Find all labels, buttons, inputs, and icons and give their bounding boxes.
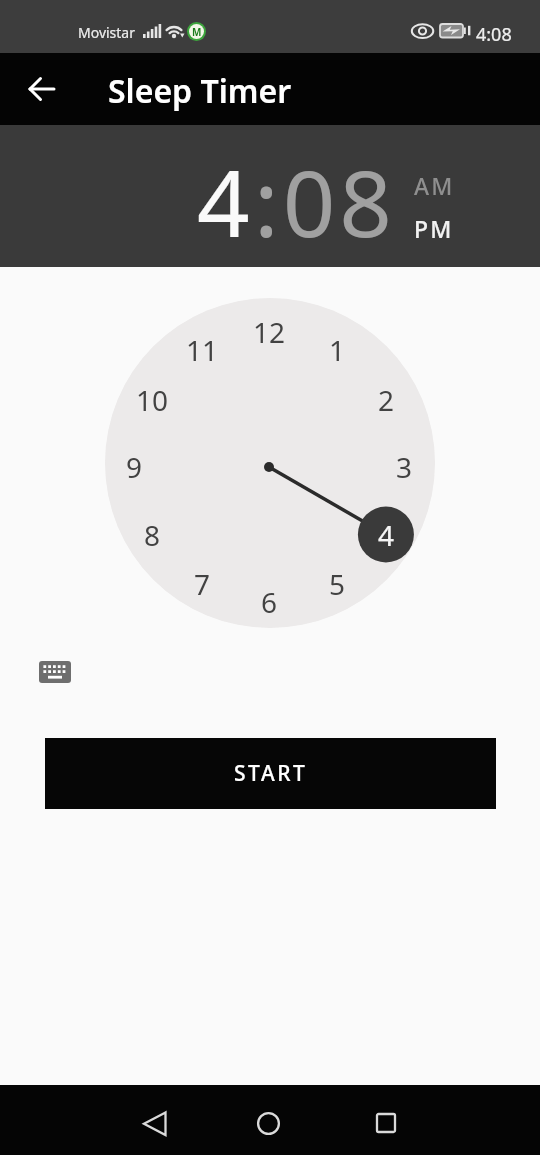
button[interactable] bbox=[245, 1100, 291, 1146]
button[interactable]: AM bbox=[414, 170, 455, 201]
staticText: 6 bbox=[261, 583, 278, 621]
button[interactable] bbox=[18, 65, 66, 113]
button[interactable] bbox=[363, 1100, 409, 1146]
staticText: START bbox=[234, 759, 308, 788]
staticText: Sleep Timer bbox=[108, 69, 292, 113]
staticText: 3 bbox=[396, 448, 413, 486]
staticText: 9 bbox=[126, 448, 143, 486]
staticText: 2 bbox=[378, 381, 395, 419]
staticText: 11 bbox=[186, 331, 219, 369]
staticText: 12 bbox=[253, 313, 286, 351]
staticText: PM bbox=[414, 213, 454, 244]
staticText: 4 bbox=[378, 516, 395, 554]
button[interactable]: PM bbox=[414, 213, 454, 244]
staticText: AM bbox=[414, 170, 455, 201]
button[interactable] bbox=[132, 1101, 178, 1147]
button[interactable] bbox=[27, 650, 83, 694]
staticText: 4 bbox=[378, 516, 395, 554]
staticText: M bbox=[192, 25, 202, 39]
staticText: 7 bbox=[194, 565, 211, 603]
staticText: Movistar bbox=[78, 23, 136, 42]
button[interactable]: START bbox=[45, 738, 496, 809]
staticText: 5 bbox=[329, 565, 346, 603]
staticText: 1 bbox=[329, 331, 346, 369]
staticText: 8 bbox=[144, 516, 161, 554]
staticText: :08 bbox=[254, 139, 396, 264]
staticText: 4:08 bbox=[476, 22, 512, 47]
staticText: 10 bbox=[136, 381, 169, 419]
staticText: 4 bbox=[197, 139, 254, 264]
